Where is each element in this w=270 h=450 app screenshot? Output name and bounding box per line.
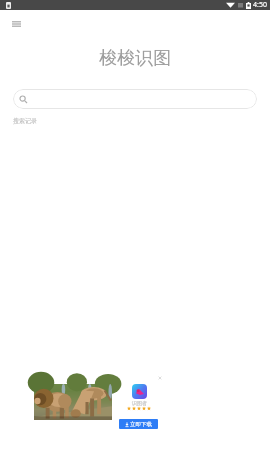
staticText: 梭梭识图 — [0, 47, 270, 70]
button[interactable]: Menu — [8, 16, 24, 32]
staticText: 搜索记录 — [13, 117, 37, 125]
button[interactable]: Close ad — [155, 373, 165, 383]
staticText: 立即下载 — [130, 421, 152, 428]
staticText: 4:50 — [253, 0, 267, 10]
button[interactable]: Advertisement image — [34, 384, 112, 420]
button[interactable]: 立即下载 — [119, 419, 158, 429]
button[interactable]: App icon — [132, 384, 147, 399]
staticText: 识图者 — [128, 400, 151, 406]
button[interactable] — [13, 89, 257, 109]
